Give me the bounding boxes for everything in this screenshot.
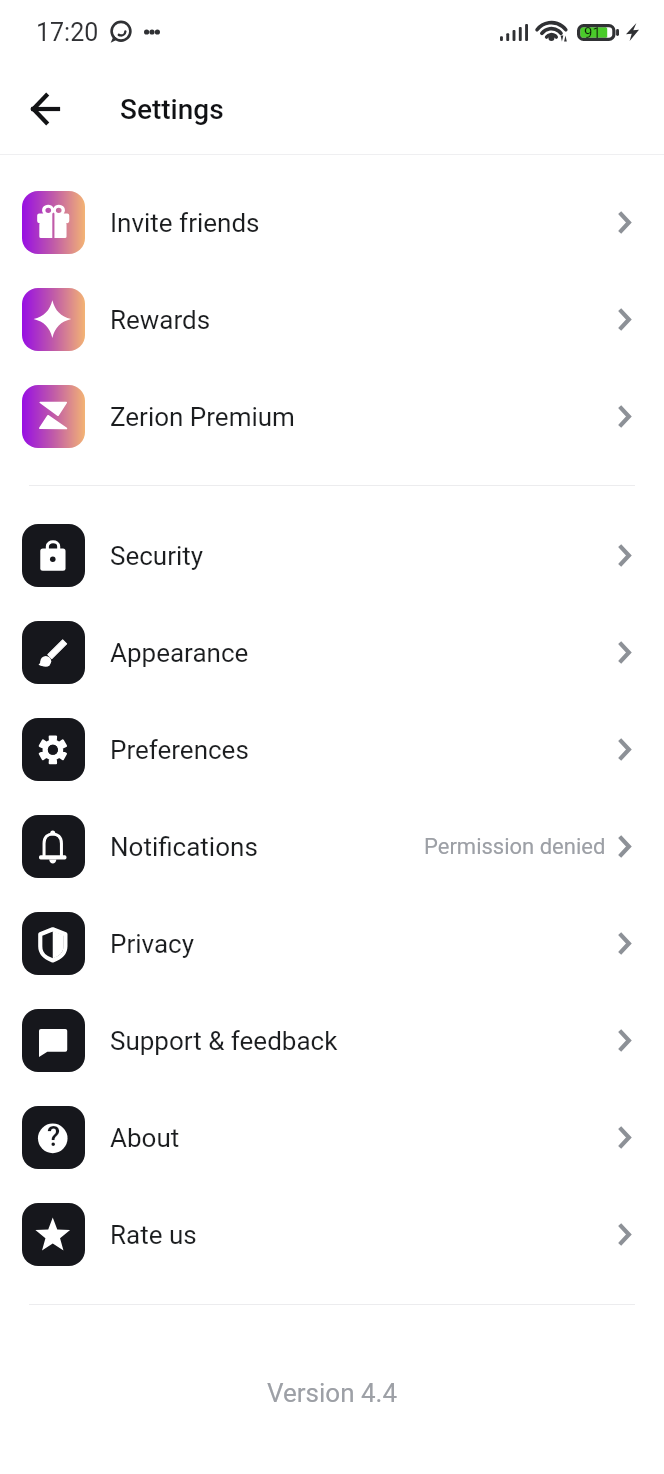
button[interactable]: Support & feedback [0,992,664,1089]
staticText: Rate us [110,1220,197,1250]
button[interactable]: Invite friends [0,174,664,271]
staticText: About [110,1123,180,1153]
staticText: Support & feedback [110,1026,338,1056]
button[interactable]: Notifications [0,798,664,895]
staticText: Preferences [110,735,249,765]
button[interactable]: Zerion Premium [0,368,664,465]
button[interactable]: Rate us [0,1186,664,1283]
staticText: Zerion Premium [110,402,295,432]
staticText: Settings [120,93,224,126]
staticText: 17:20 [36,18,99,47]
button[interactable]: Rewards [0,271,664,368]
staticText: Security [110,541,204,571]
staticText: Notifications [110,832,258,862]
staticText: Permission denied [424,834,606,860]
button[interactable]: Back [0,64,90,154]
staticText: 91 [584,24,601,41]
button[interactable]: Appearance [0,604,664,701]
staticText: ? [47,1121,61,1153]
button[interactable]: Privacy [0,895,664,992]
staticText: Rewards [110,305,211,335]
button[interactable]: ? [0,1089,664,1186]
button[interactable]: Security [0,507,664,604]
staticText: Version 4.4 [0,1378,664,1408]
staticText: Privacy [110,929,194,959]
staticText: Invite friends [110,208,260,238]
button[interactable]: Preferences [0,701,664,798]
staticText: Appearance [110,638,249,668]
